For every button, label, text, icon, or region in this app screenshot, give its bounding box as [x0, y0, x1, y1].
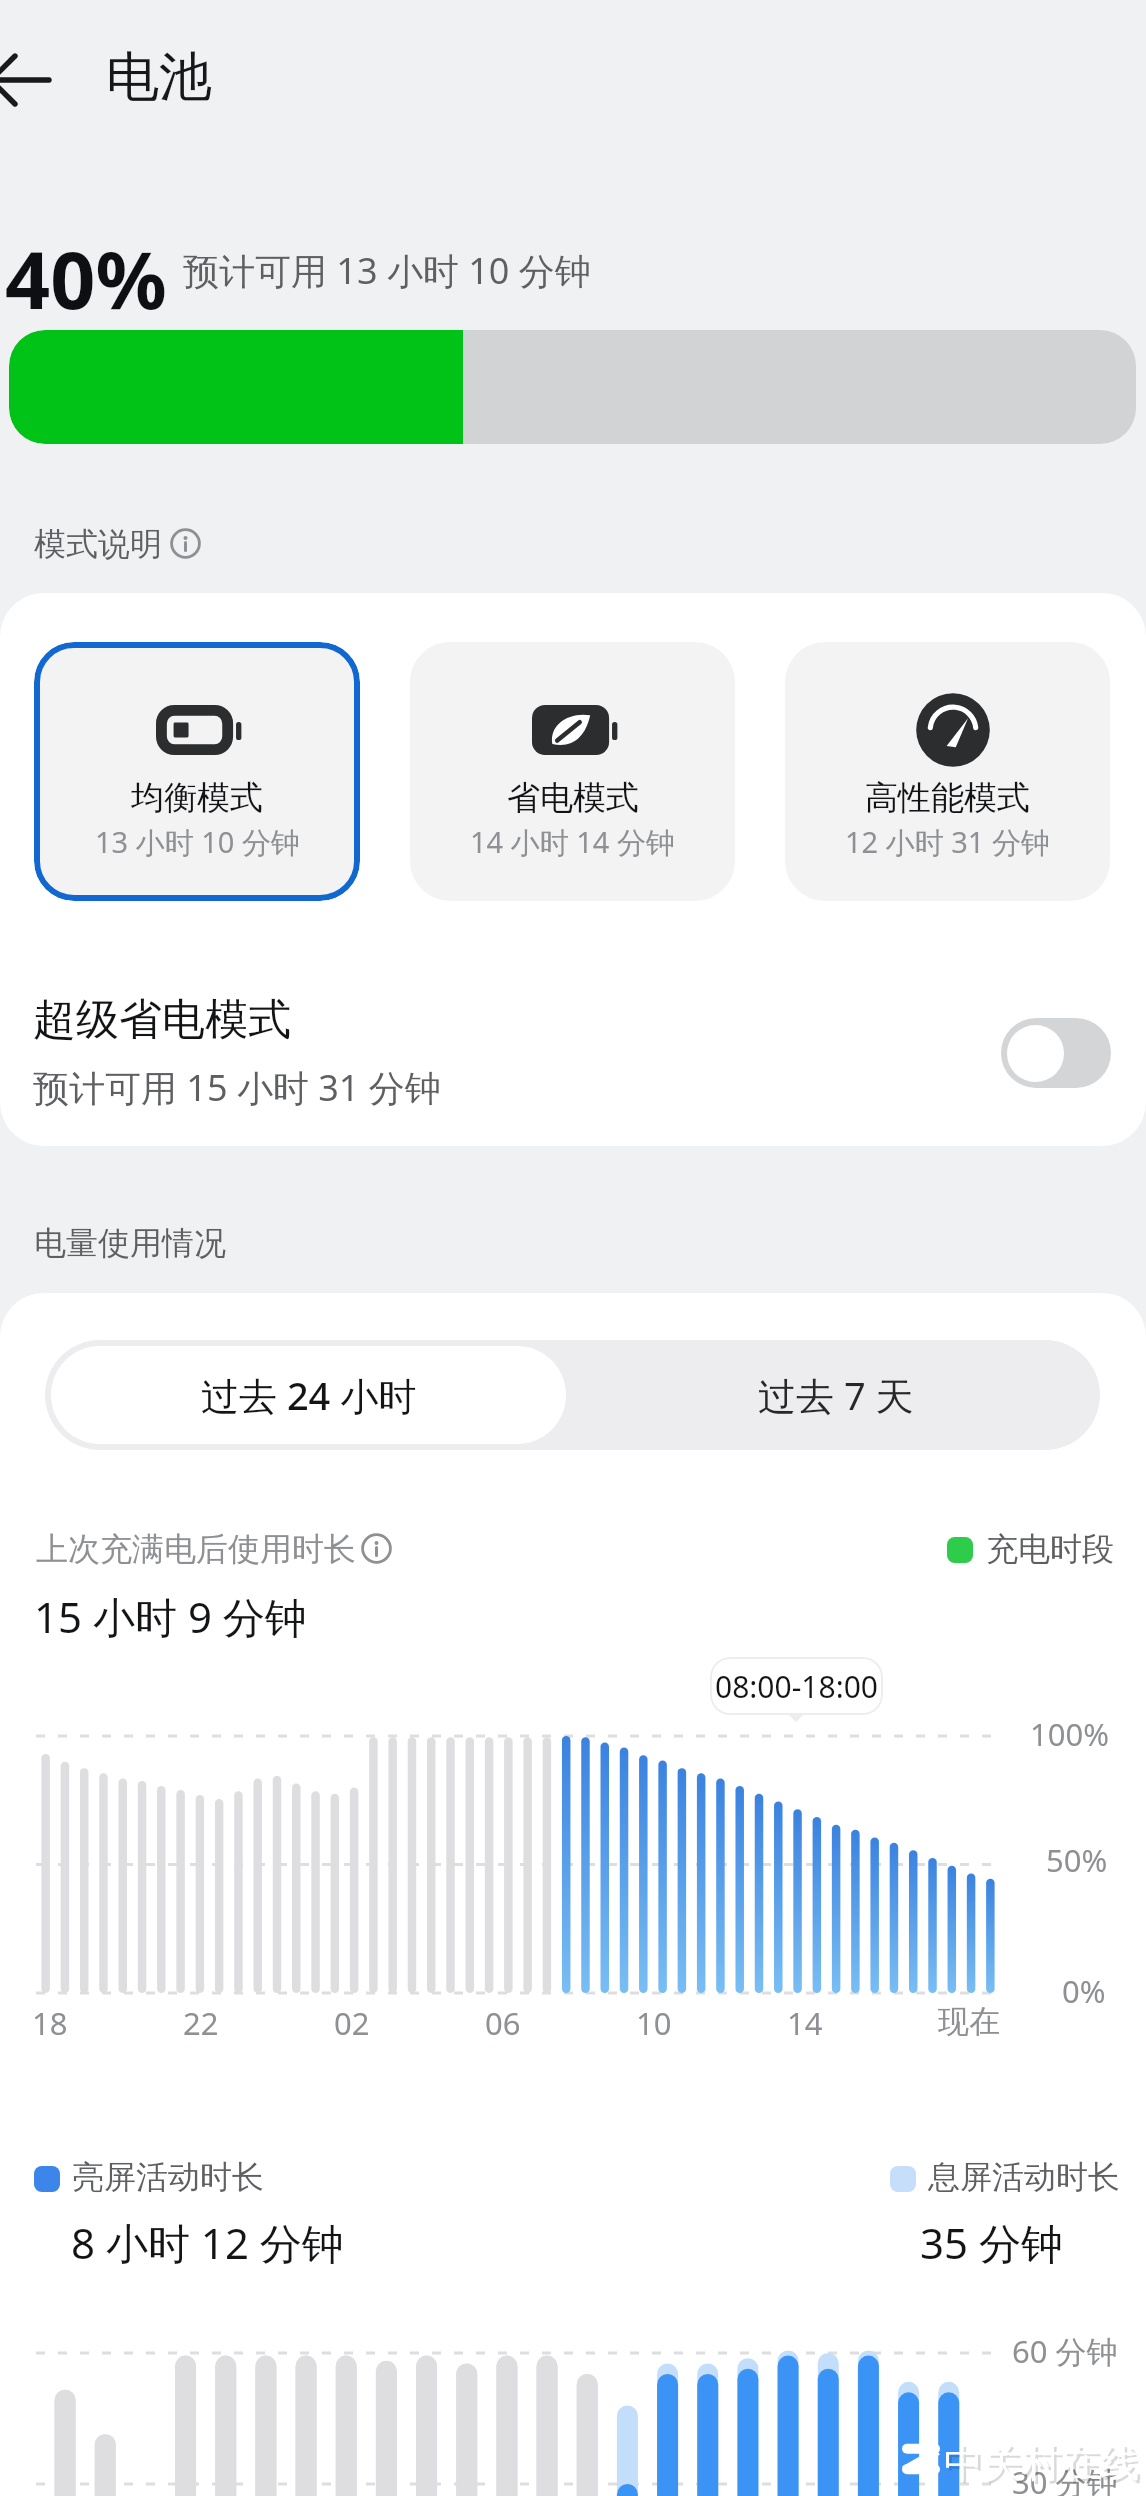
staticText: 现在 [938, 2002, 1000, 2041]
staticText: 15 小时 9 分钟 [34, 1588, 307, 1645]
staticText: 13 小时 10 分钟 [95, 822, 300, 862]
staticText: 8 小时 12 分钟 [71, 2214, 344, 2271]
staticText: 30 分钟 [1012, 2461, 1118, 2496]
staticText: 中关村在线 [944, 2438, 1139, 2487]
button[interactable]: 高性能模式 [785, 642, 1110, 901]
staticText: 50% [1046, 1839, 1108, 1881]
staticText: 中关村在线 [947, 2441, 1142, 2490]
staticText: 过去 24 小时 [201, 1369, 417, 1421]
staticText: 22 [183, 2002, 219, 2044]
staticText: 14 [787, 2002, 823, 2044]
staticText: 亮屏活动时长 [72, 2157, 264, 2197]
staticText: 过去 7 天 [758, 1369, 914, 1421]
staticText: 模式说明 [34, 524, 162, 564]
staticText: 息屏活动时长 [928, 2157, 1120, 2197]
staticText: 02 [334, 2002, 370, 2044]
staticText: 14 小时 14 分钟 [470, 822, 675, 862]
button[interactable]: 过去 24 小时 [51, 1346, 566, 1444]
staticText: 上次充满电后使用时长 [36, 1529, 356, 1569]
staticText: 充电时段 [986, 1529, 1114, 1569]
staticText: 40% [5, 225, 167, 333]
button[interactable]: Back [0, 18, 88, 146]
button[interactable]: 模式说明 [170, 528, 201, 559]
staticText: 06 [485, 2002, 521, 2044]
button[interactable]: 均衡模式 [34, 642, 360, 901]
button[interactable]: 过去 7 天 [572, 1340, 1100, 1450]
staticText: 0% [1062, 1970, 1106, 2012]
staticText: 100% [1030, 1713, 1109, 1755]
staticText: 18 [32, 2002, 68, 2044]
staticText: 电量使用情况 [34, 1223, 226, 1263]
staticText: 10 [636, 2002, 672, 2044]
staticText: 08:00-18:00 [715, 1666, 879, 1707]
button[interactable]: 省电模式 [410, 642, 735, 901]
button[interactable]: 超级省电模式 [0, 965, 1146, 1140]
staticText: 电池 [106, 44, 212, 111]
staticText: 12 小时 31 分钟 [845, 822, 1050, 862]
staticText: 35 分钟 [920, 2214, 1063, 2271]
staticText: 省电模式 [507, 777, 639, 819]
staticText: 均衡模式 [131, 777, 263, 819]
staticText: 预计可用 13 小时 10 分钟 [183, 246, 591, 295]
staticText: 高性能模式 [865, 777, 1030, 819]
staticText: 预计可用 15 小时 31 分钟 [33, 1063, 441, 1112]
staticText: 60 分钟 [1012, 2330, 1118, 2372]
staticText: 超级省电模式 [33, 993, 291, 1047]
button[interactable]: 超级省电模式 开关 [1001, 1018, 1111, 1088]
